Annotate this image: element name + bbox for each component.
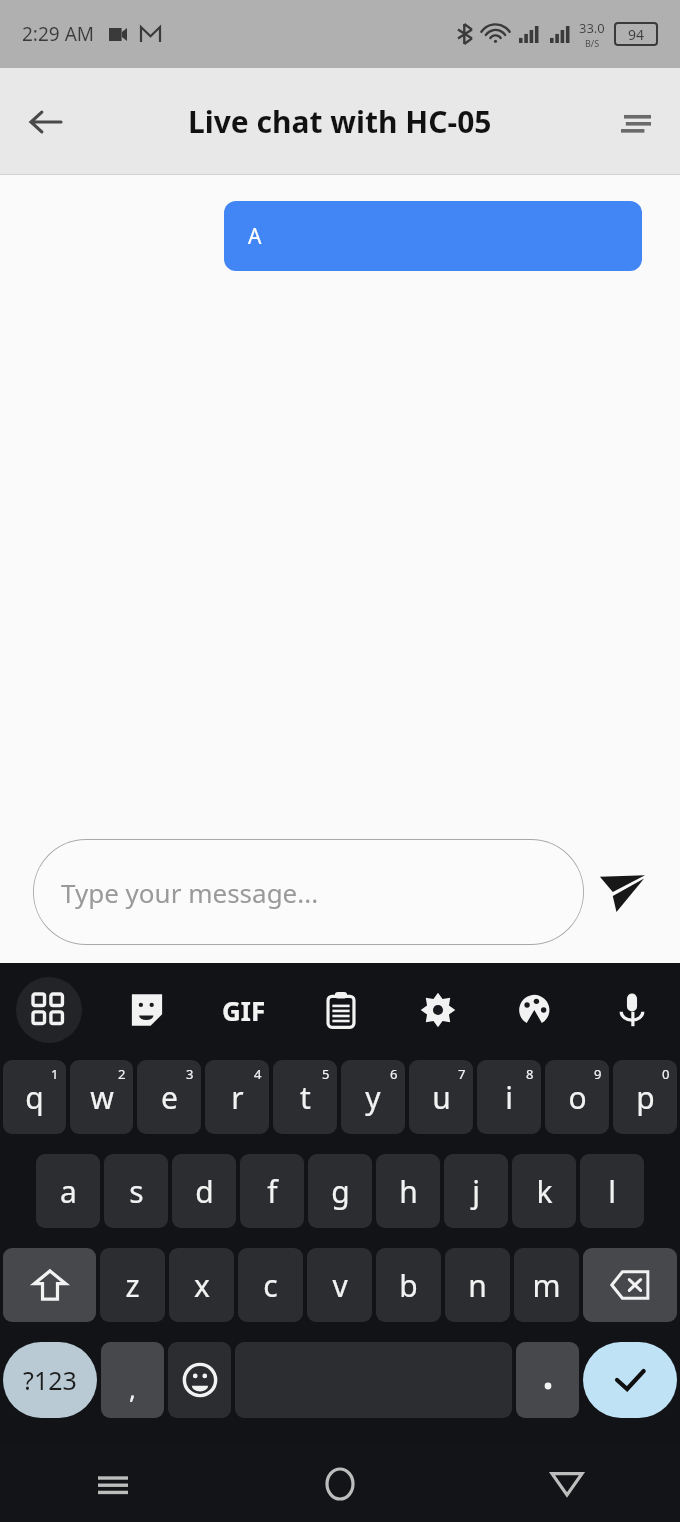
staticText: 3 [186, 1065, 194, 1083]
staticText: p [636, 1077, 655, 1118]
staticText: 1 [51, 1065, 59, 1083]
button[interactable]: Home [226, 1446, 453, 1522]
staticText: s [129, 1171, 144, 1212]
button[interactable]: l [580, 1154, 644, 1228]
button[interactable]: w [70, 1060, 133, 1134]
button[interactable]: h [376, 1154, 440, 1228]
button[interactable]: u [409, 1060, 473, 1134]
staticText: ?123 [23, 1363, 77, 1397]
staticText: f [267, 1171, 278, 1212]
button[interactable]: f [240, 1154, 304, 1228]
button[interactable]: Menu [606, 92, 666, 152]
staticText: n [468, 1265, 487, 1306]
button[interactable]: o [545, 1060, 609, 1134]
staticText: B/S [585, 37, 600, 49]
button[interactable] [516, 1342, 579, 1418]
button[interactable]: Apps [0, 966, 98, 1054]
button[interactable]: Shift [3, 1248, 96, 1322]
button[interactable]: x [169, 1248, 234, 1322]
staticText: q [25, 1077, 44, 1118]
staticText: 94 [628, 25, 645, 44]
staticText: 4 [254, 1065, 262, 1083]
staticText: v [332, 1265, 348, 1306]
button[interactable]: GIF [195, 966, 292, 1054]
button[interactable]: k [512, 1154, 576, 1228]
button[interactable]: a [36, 1154, 100, 1228]
button[interactable]: Recent apps [0, 1446, 226, 1522]
staticText: i [505, 1077, 513, 1118]
button[interactable]: r [205, 1060, 269, 1134]
button[interactable]: g [308, 1154, 372, 1228]
button[interactable]: Theme [486, 966, 583, 1054]
staticText: a [60, 1171, 77, 1212]
staticText: GIF [222, 993, 266, 1028]
staticText: 7 [458, 1065, 466, 1083]
button[interactable]: q [3, 1060, 66, 1134]
staticText: o [568, 1077, 587, 1118]
button[interactable]: s [104, 1154, 168, 1228]
button[interactable]: e [137, 1060, 201, 1134]
staticText: l [608, 1171, 616, 1212]
button[interactable]: Type your message... [33, 839, 584, 945]
staticText: 6 [390, 1065, 398, 1083]
button[interactable]: d [172, 1154, 236, 1228]
button[interactable]: z [100, 1248, 165, 1322]
button[interactable]: c [238, 1248, 303, 1322]
button[interactable]: y [341, 1060, 405, 1134]
button[interactable]: n [445, 1248, 510, 1322]
button[interactable]: , [101, 1342, 164, 1418]
button[interactable]: Emoji [168, 1342, 231, 1418]
staticText: 9 [594, 1065, 602, 1083]
button[interactable]: j [444, 1154, 508, 1228]
button[interactable]: Voice input [583, 966, 680, 1054]
staticText: 33.0 [579, 19, 605, 37]
button[interactable]: t [273, 1060, 337, 1134]
button[interactable]: p [613, 1060, 677, 1134]
staticText: m [532, 1265, 561, 1306]
staticText: Type your message... [61, 875, 319, 910]
staticText: Live chat with HC-05 [188, 101, 492, 142]
staticText: u [432, 1077, 451, 1118]
button[interactable]: Settings [389, 966, 486, 1054]
button[interactable]: Backspace [583, 1248, 677, 1322]
staticText: b [399, 1265, 418, 1306]
staticText: k [536, 1171, 553, 1212]
staticText: t [300, 1077, 311, 1118]
staticText: 2 [118, 1065, 126, 1083]
staticText: 2:29 AM [22, 21, 95, 47]
staticText: j [472, 1171, 480, 1212]
button[interactable]: Clipboard [292, 966, 389, 1054]
staticText: y [365, 1077, 381, 1118]
button[interactable]: Send [584, 854, 660, 930]
button[interactable]: ?123 [3, 1342, 97, 1418]
staticText: d [195, 1171, 214, 1212]
button[interactable]: Back [14, 90, 78, 154]
staticText: z [125, 1265, 140, 1306]
staticText: 0 [662, 1065, 670, 1083]
staticText: g [331, 1171, 350, 1212]
staticText: , [129, 1371, 136, 1406]
button[interactable]: m [514, 1248, 579, 1322]
button[interactable]: A [224, 201, 642, 271]
button[interactable]: v [307, 1248, 372, 1322]
button[interactable]: b [376, 1248, 441, 1322]
staticText: w [90, 1077, 114, 1118]
staticText: 8 [526, 1065, 534, 1083]
staticText: h [399, 1171, 418, 1212]
staticText: 5 [322, 1065, 330, 1083]
staticText: e [161, 1077, 178, 1118]
button[interactable]: Back [453, 1446, 680, 1522]
staticText: A [248, 222, 262, 251]
button[interactable]: Enter [583, 1342, 677, 1418]
staticText: x [194, 1265, 210, 1306]
button[interactable]: i [477, 1060, 541, 1134]
staticText: c [263, 1265, 278, 1306]
button[interactable]: Sticker [98, 966, 195, 1054]
staticText: r [231, 1077, 244, 1118]
